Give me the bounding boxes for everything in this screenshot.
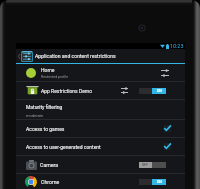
staticText: ON xyxy=(157,89,162,93)
staticText: ON xyxy=(157,180,162,184)
button[interactable]: Maturity filtering xyxy=(16,100,185,119)
button[interactable]: Navigate up xyxy=(16,49,21,63)
staticText: Restricted profile xyxy=(41,75,69,79)
button[interactable]: Chrome xyxy=(16,174,185,189)
staticText: Access to user-generated content xyxy=(26,144,101,150)
staticText: App Restrictions Demo xyxy=(41,88,93,94)
button[interactable]: Camera xyxy=(16,156,185,173)
staticText: Chrome xyxy=(41,179,60,185)
staticText: 10:23 xyxy=(170,43,184,49)
button[interactable]: Home xyxy=(16,64,185,81)
staticText: Camera xyxy=(40,162,58,168)
button[interactable]: Switch on xyxy=(139,179,166,185)
staticText: Maturity filtering xyxy=(26,104,63,110)
button[interactable]: Configure profile xyxy=(159,64,171,81)
button[interactable]: Access to games xyxy=(16,120,185,137)
staticText: moderate xyxy=(26,113,44,118)
button[interactable]: Switch off xyxy=(139,162,166,168)
button[interactable]: Restrictions settings xyxy=(21,49,33,63)
staticText: OFF xyxy=(142,163,149,167)
button[interactable]: Access to user-generated content xyxy=(16,138,185,155)
staticText: Home xyxy=(41,67,55,73)
button[interactable]: Switch on xyxy=(139,88,166,94)
button[interactable]: Configure app restrictions xyxy=(118,82,130,99)
staticText: Access to games xyxy=(26,126,65,132)
button[interactable]: App Restrictions Demo xyxy=(16,82,185,99)
staticText: Application and content restrictions xyxy=(35,53,116,59)
